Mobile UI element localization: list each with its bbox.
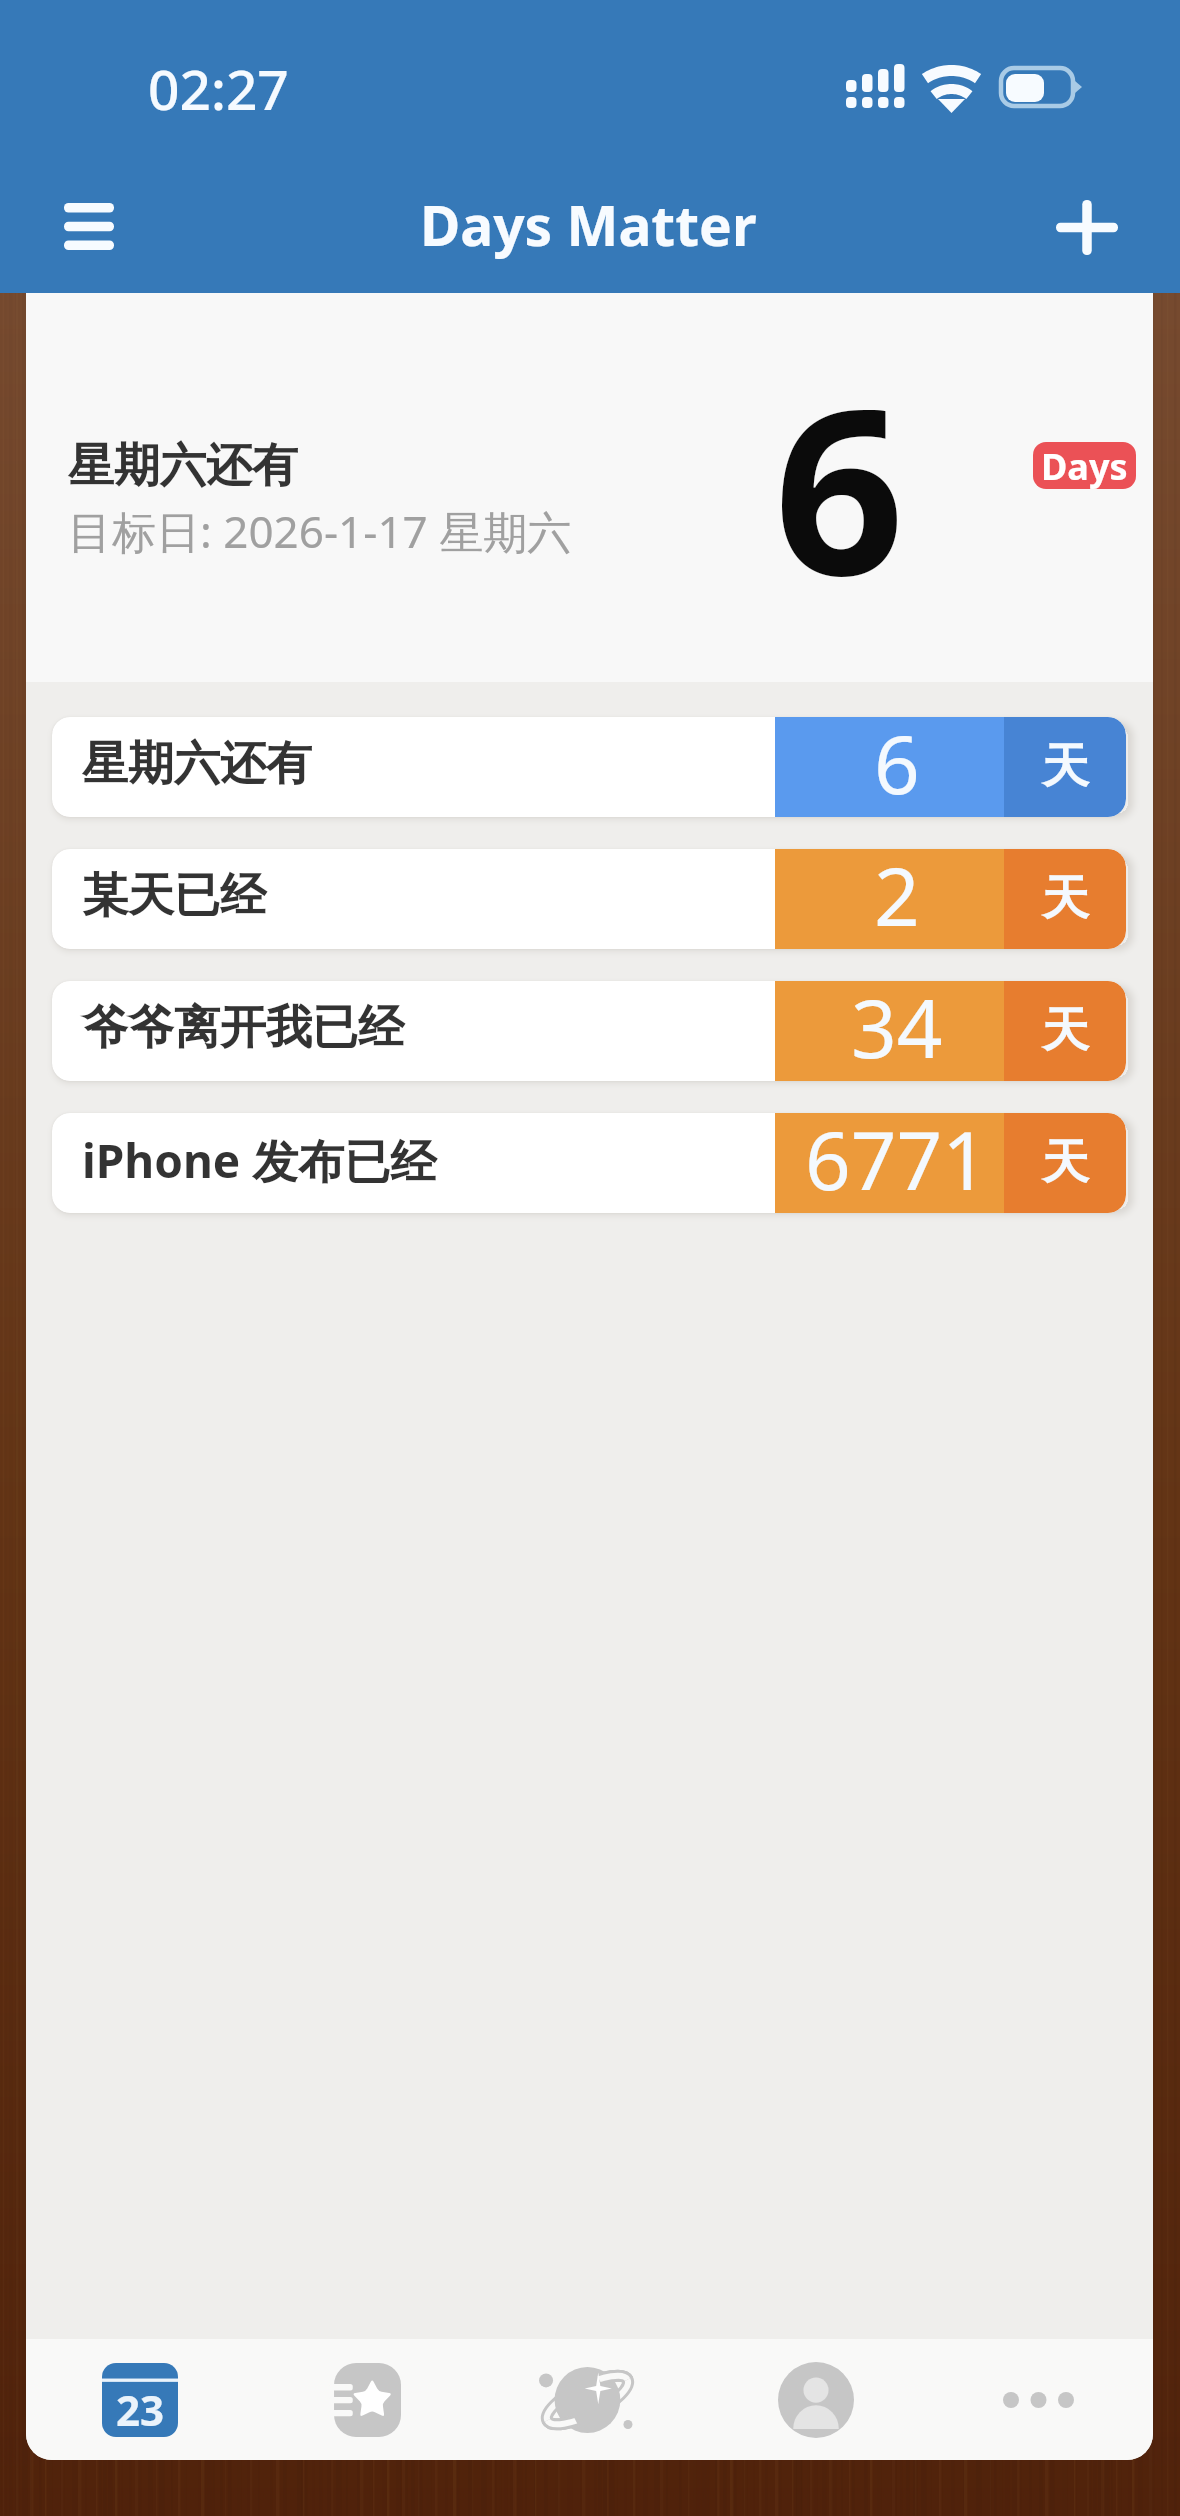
staticText: 6771 <box>805 1113 989 1204</box>
staticText: 星期六还有 <box>82 735 312 793</box>
button[interactable]: iPhone 发布已经 <box>52 1113 1126 1213</box>
button[interactable]: Menu <box>39 176 139 276</box>
staticText: 目标日: 2026-1-17 星期六 <box>68 501 572 561</box>
staticText: 某天已经 <box>82 867 266 925</box>
staticText: 6 <box>774 331 905 642</box>
button[interactable]: Calendar <box>84 2339 196 2460</box>
button[interactable]: Add <box>1037 177 1137 277</box>
button[interactable]: 星期六还有 <box>26 293 1153 682</box>
staticText: 星期六还有 <box>68 437 298 495</box>
staticText: 爷爷离开我已经 <box>82 999 404 1057</box>
button[interactable]: 某天已经 <box>52 849 1126 949</box>
staticText: Days <box>1041 442 1128 489</box>
staticText: 天 <box>1042 737 1089 796</box>
staticText: 天 <box>1042 869 1089 928</box>
button[interactable]: Profile <box>760 2339 872 2460</box>
button[interactable]: Discover <box>531 2339 643 2460</box>
staticText: 6 <box>874 717 920 808</box>
staticText: 2 <box>874 849 920 940</box>
staticText: iPhone 发布已经 <box>82 1129 437 1192</box>
button[interactable]: Favorites <box>309 2339 421 2460</box>
staticText: 02:27 <box>148 51 289 126</box>
staticText: 34 <box>851 981 943 1072</box>
staticText: 天 <box>1042 1133 1089 1192</box>
button[interactable]: 爷爷离开我已经 <box>52 981 1126 1081</box>
staticText: 23 <box>116 2381 165 2438</box>
button[interactable]: 星期六还有 <box>52 717 1126 817</box>
staticText: Days Matter <box>420 187 757 262</box>
button[interactable]: More <box>982 2339 1094 2460</box>
staticText: 天 <box>1042 1001 1089 1060</box>
